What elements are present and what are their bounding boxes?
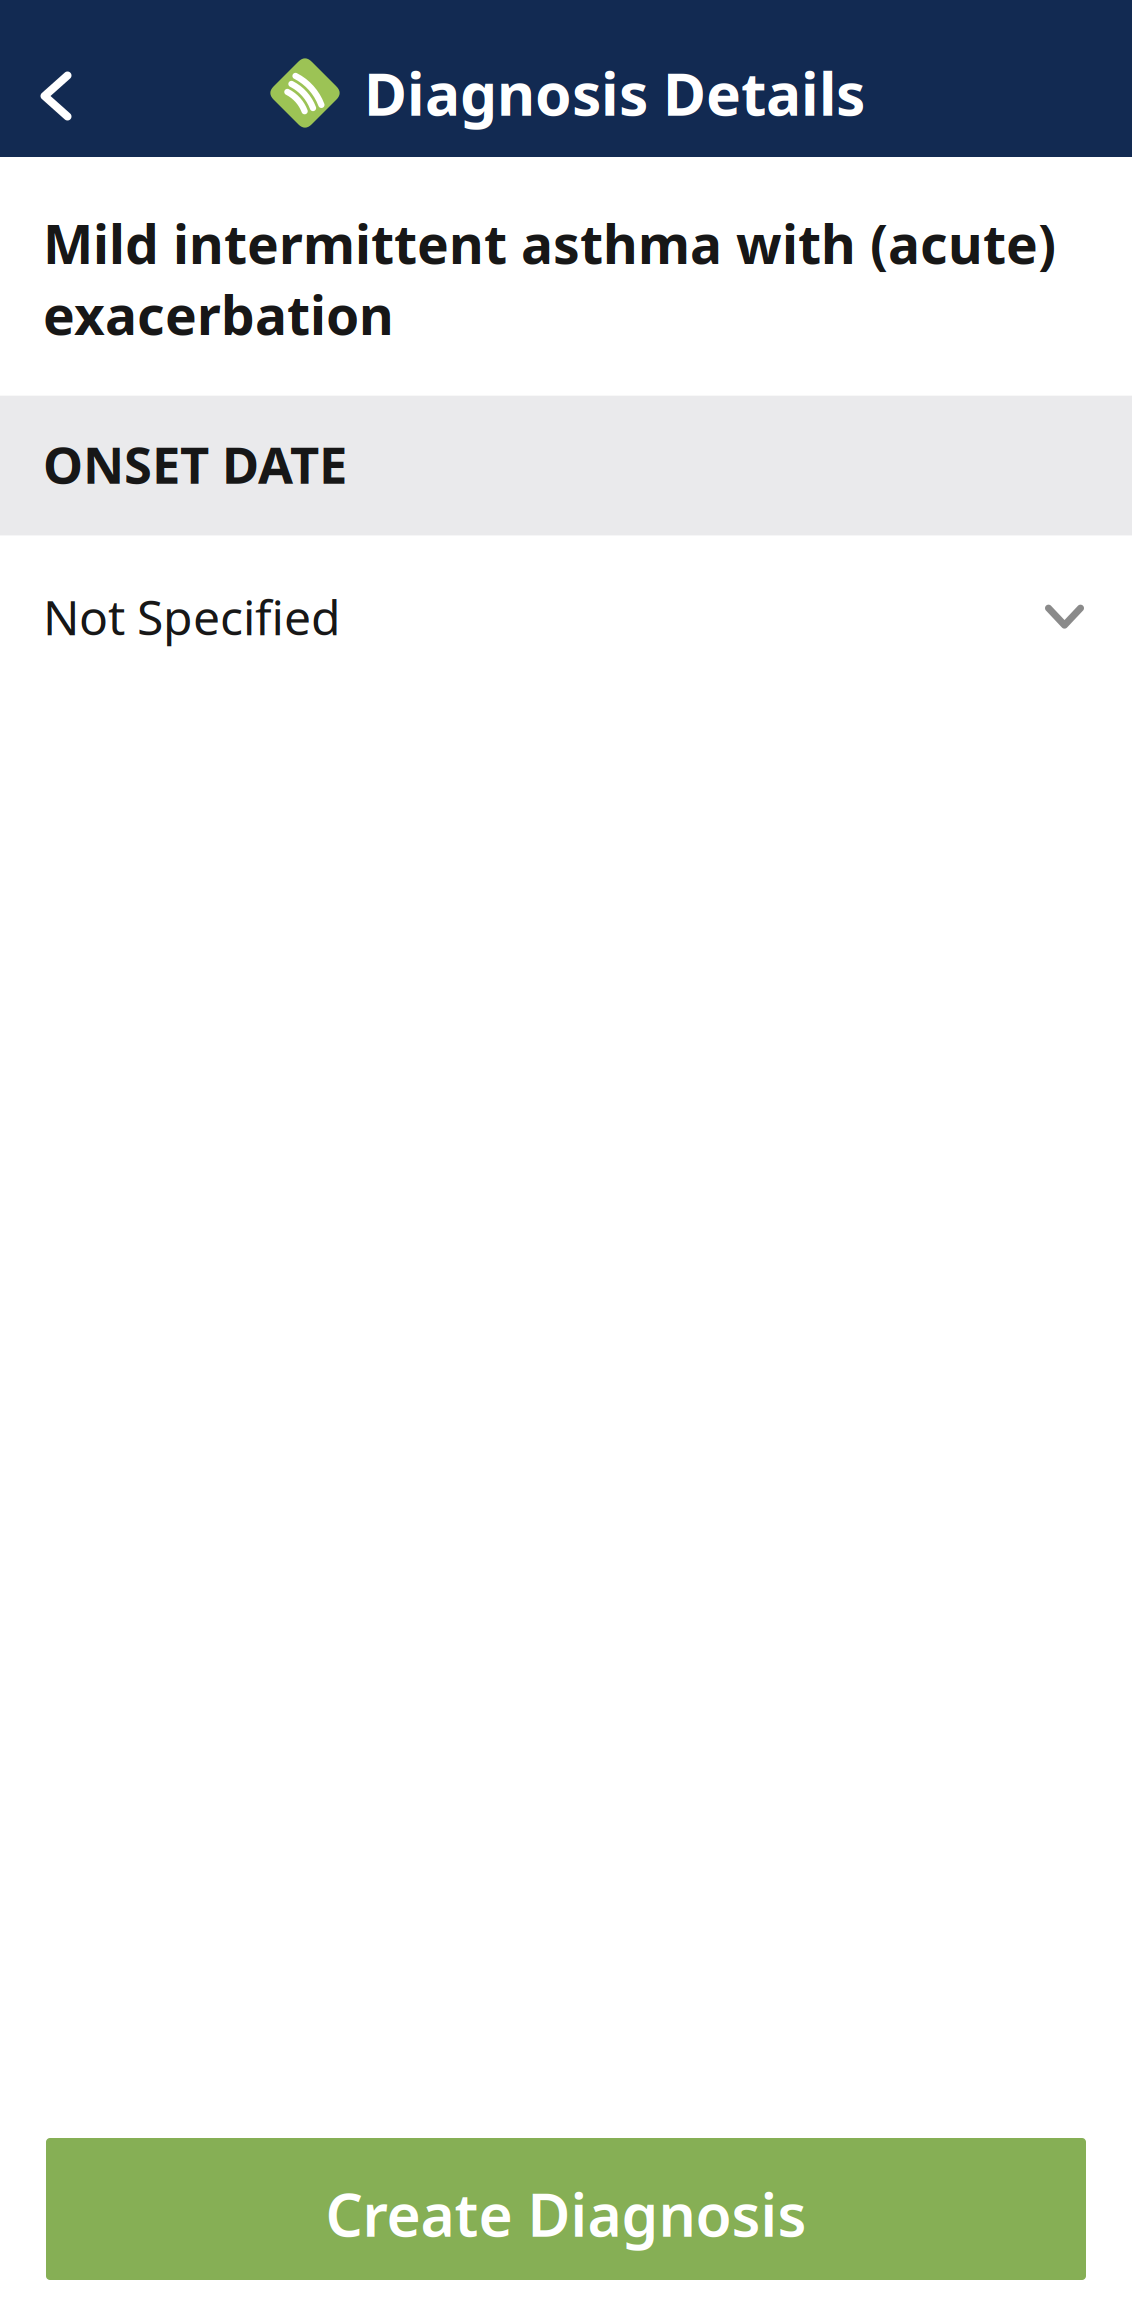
button[interactable]: Select onset date	[1004, 564, 1125, 670]
staticText: Create Diagnosis	[325, 2175, 806, 2253]
button[interactable]: Back	[0, 29, 112, 157]
button[interactable]: Create Diagnosis	[46, 2138, 1086, 2280]
staticText: ONSET DATE	[43, 430, 347, 498]
staticText: Not Specified	[43, 585, 341, 648]
staticText: Diagnosis Details	[364, 54, 865, 132]
staticText: Mild intermittent asthma with (acute) ex…	[43, 208, 1056, 350]
